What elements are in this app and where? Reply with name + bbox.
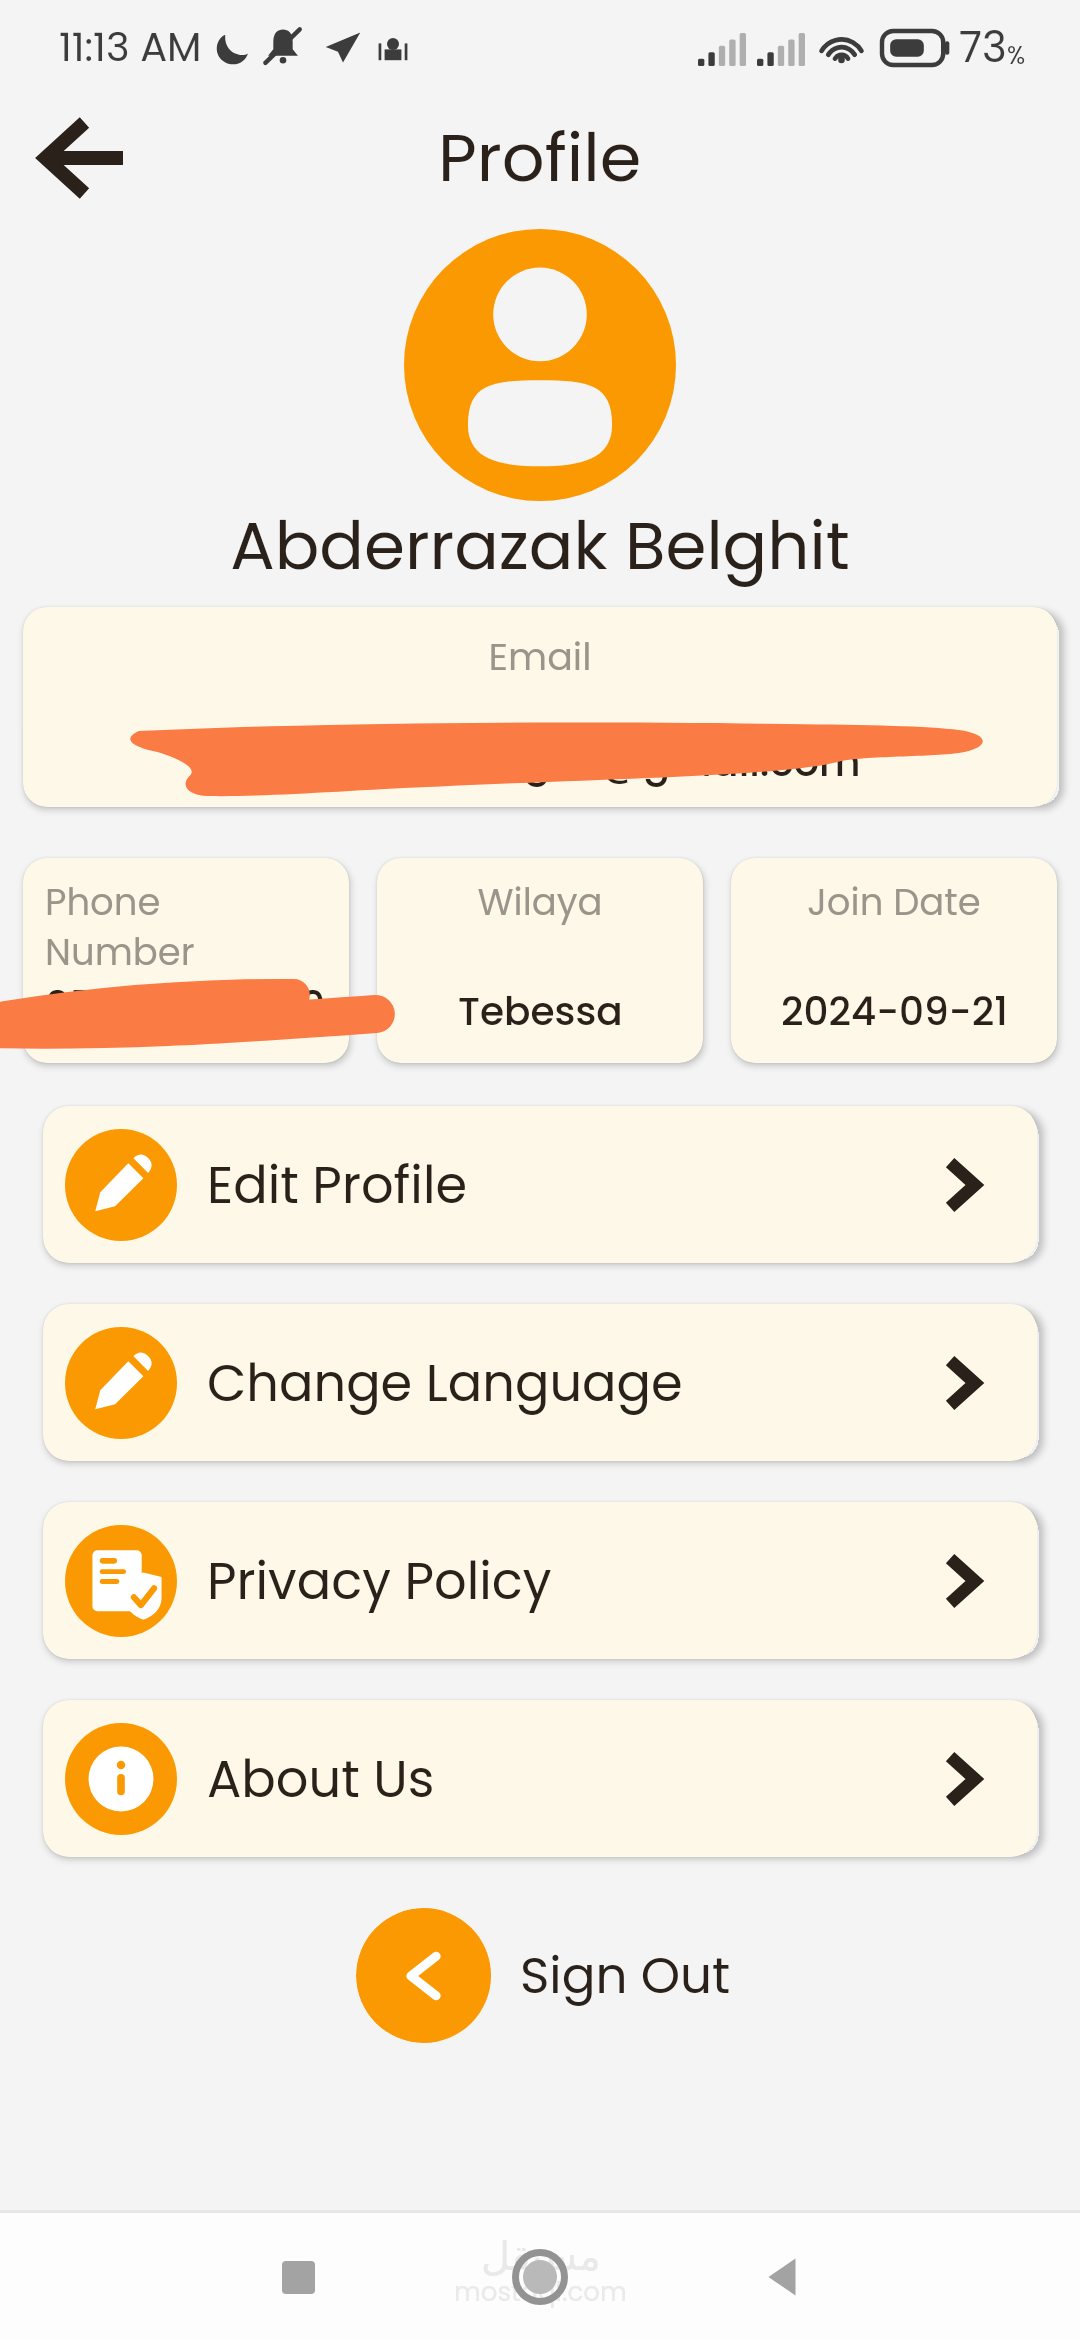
button[interactable]: Edit Profile: [43, 1106, 1037, 1263]
staticText: Privacy Policy: [207, 1545, 945, 1616]
staticText: Wilaya: [477, 876, 603, 928]
button[interactable]: Privacy Policy: [43, 1502, 1037, 1659]
staticText: Sign Out: [520, 1941, 731, 2011]
staticText: 11:13 AM: [59, 19, 202, 75]
staticText: %: [1007, 39, 1026, 73]
staticText: 73: [959, 18, 1007, 77]
staticText: Email: [23, 630, 1057, 683]
button[interactable]: Home: [498, 2235, 582, 2319]
staticText: Edit Profile: [207, 1149, 945, 1220]
button[interactable]: Back: [22, 108, 142, 208]
button[interactable]: Change Language: [43, 1304, 1037, 1461]
staticText: mostaql.com: [454, 2274, 627, 2310]
staticText: Join Date: [807, 876, 981, 928]
button[interactable]: Sign Out: [356, 1908, 731, 2043]
staticText: About Us: [207, 1743, 945, 1814]
button[interactable]: Wilaya: [377, 858, 703, 1063]
button[interactable]: Email: [23, 607, 1057, 807]
staticText: Abderrazak Belghit: [0, 500, 1080, 592]
button[interactable]: Recent apps: [256, 2235, 340, 2319]
staticText: Change Language: [207, 1347, 945, 1418]
staticText: 0555 00 00 00: [45, 978, 326, 1033]
button[interactable]: About Us: [43, 1700, 1037, 1857]
staticText: مستقل: [481, 2233, 601, 2280]
staticText: Phone Number: [45, 876, 195, 978]
button[interactable]: Phone Number: [23, 858, 349, 1063]
staticText: Profile: [438, 111, 642, 205]
staticText: abderrazak.belghit@gmail.com: [23, 734, 1057, 790]
button[interactable]: Back: [740, 2235, 824, 2319]
staticText: 2024-09-21: [781, 984, 1008, 1039]
staticText: Tebessa: [458, 984, 623, 1039]
button[interactable]: Join Date: [731, 858, 1057, 1063]
